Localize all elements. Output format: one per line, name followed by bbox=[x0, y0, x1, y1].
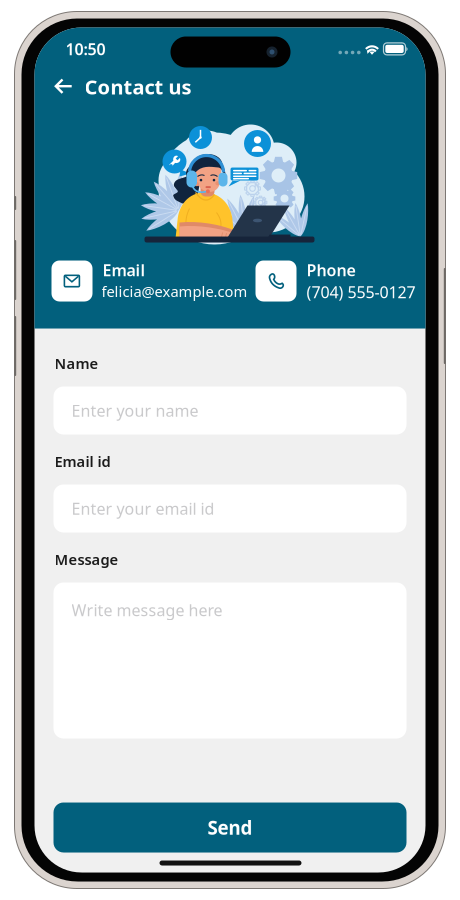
staticText: Send bbox=[207, 815, 252, 840]
button[interactable]: Write message here bbox=[53, 582, 406, 738]
staticText: 10:50 bbox=[65, 38, 105, 60]
staticText: Email bbox=[102, 259, 145, 281]
staticText: (704) 555-0127 bbox=[306, 281, 415, 303]
staticText: Write message here bbox=[71, 599, 222, 621]
staticText: Message bbox=[54, 549, 118, 569]
button[interactable]: Phone bbox=[255, 260, 296, 301]
button[interactable]: Back bbox=[45, 70, 81, 102]
button[interactable]: Send bbox=[53, 802, 406, 852]
staticText: Enter your name bbox=[71, 400, 198, 421]
staticText: Enter your email id bbox=[71, 498, 214, 519]
staticText: Phone bbox=[306, 259, 355, 281]
staticText: Email id bbox=[54, 451, 110, 471]
staticText: felicia@example.com bbox=[101, 281, 247, 301]
staticText: Contact us bbox=[84, 73, 191, 100]
staticText: Name bbox=[54, 353, 98, 373]
button[interactable]: Enter your email id bbox=[53, 484, 406, 532]
button[interactable]: Email bbox=[51, 260, 92, 301]
button[interactable]: Enter your name bbox=[53, 386, 406, 434]
